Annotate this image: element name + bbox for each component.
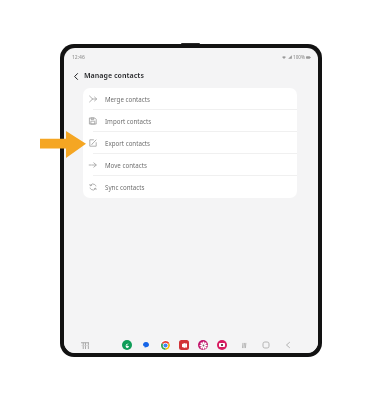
button[interactable]: Import contacts (83, 110, 297, 132)
staticText: Merge contacts (105, 95, 150, 103)
button[interactable]: All apps (79, 339, 91, 351)
staticText: Manage contacts (84, 71, 144, 81)
button[interactable]: Recents (238, 339, 250, 351)
button[interactable]: Back (282, 339, 294, 351)
staticText: Move contacts (105, 161, 147, 169)
button[interactable]: YouTube Music (217, 340, 227, 350)
button[interactable]: Home (260, 339, 272, 351)
staticText: Import contacts (105, 117, 152, 125)
staticText: 12:46 (72, 54, 85, 61)
button[interactable]: Sync contacts (83, 176, 297, 198)
staticText: Export contacts (105, 139, 151, 147)
button[interactable]: Navigate up (69, 69, 83, 83)
button[interactable]: Merge contacts (83, 88, 297, 110)
button[interactable]: Messenger (141, 340, 151, 350)
staticText: 100% (293, 54, 305, 60)
button[interactable]: Export contacts (83, 132, 297, 154)
button[interactable]: Phone (122, 340, 132, 350)
button[interactable]: Move contacts (83, 154, 297, 176)
button[interactable]: Chrome (160, 340, 170, 350)
button[interactable]: Office (179, 340, 189, 350)
staticText: Sync contacts (105, 183, 145, 191)
button[interactable]: Galaxy Store (198, 340, 208, 350)
